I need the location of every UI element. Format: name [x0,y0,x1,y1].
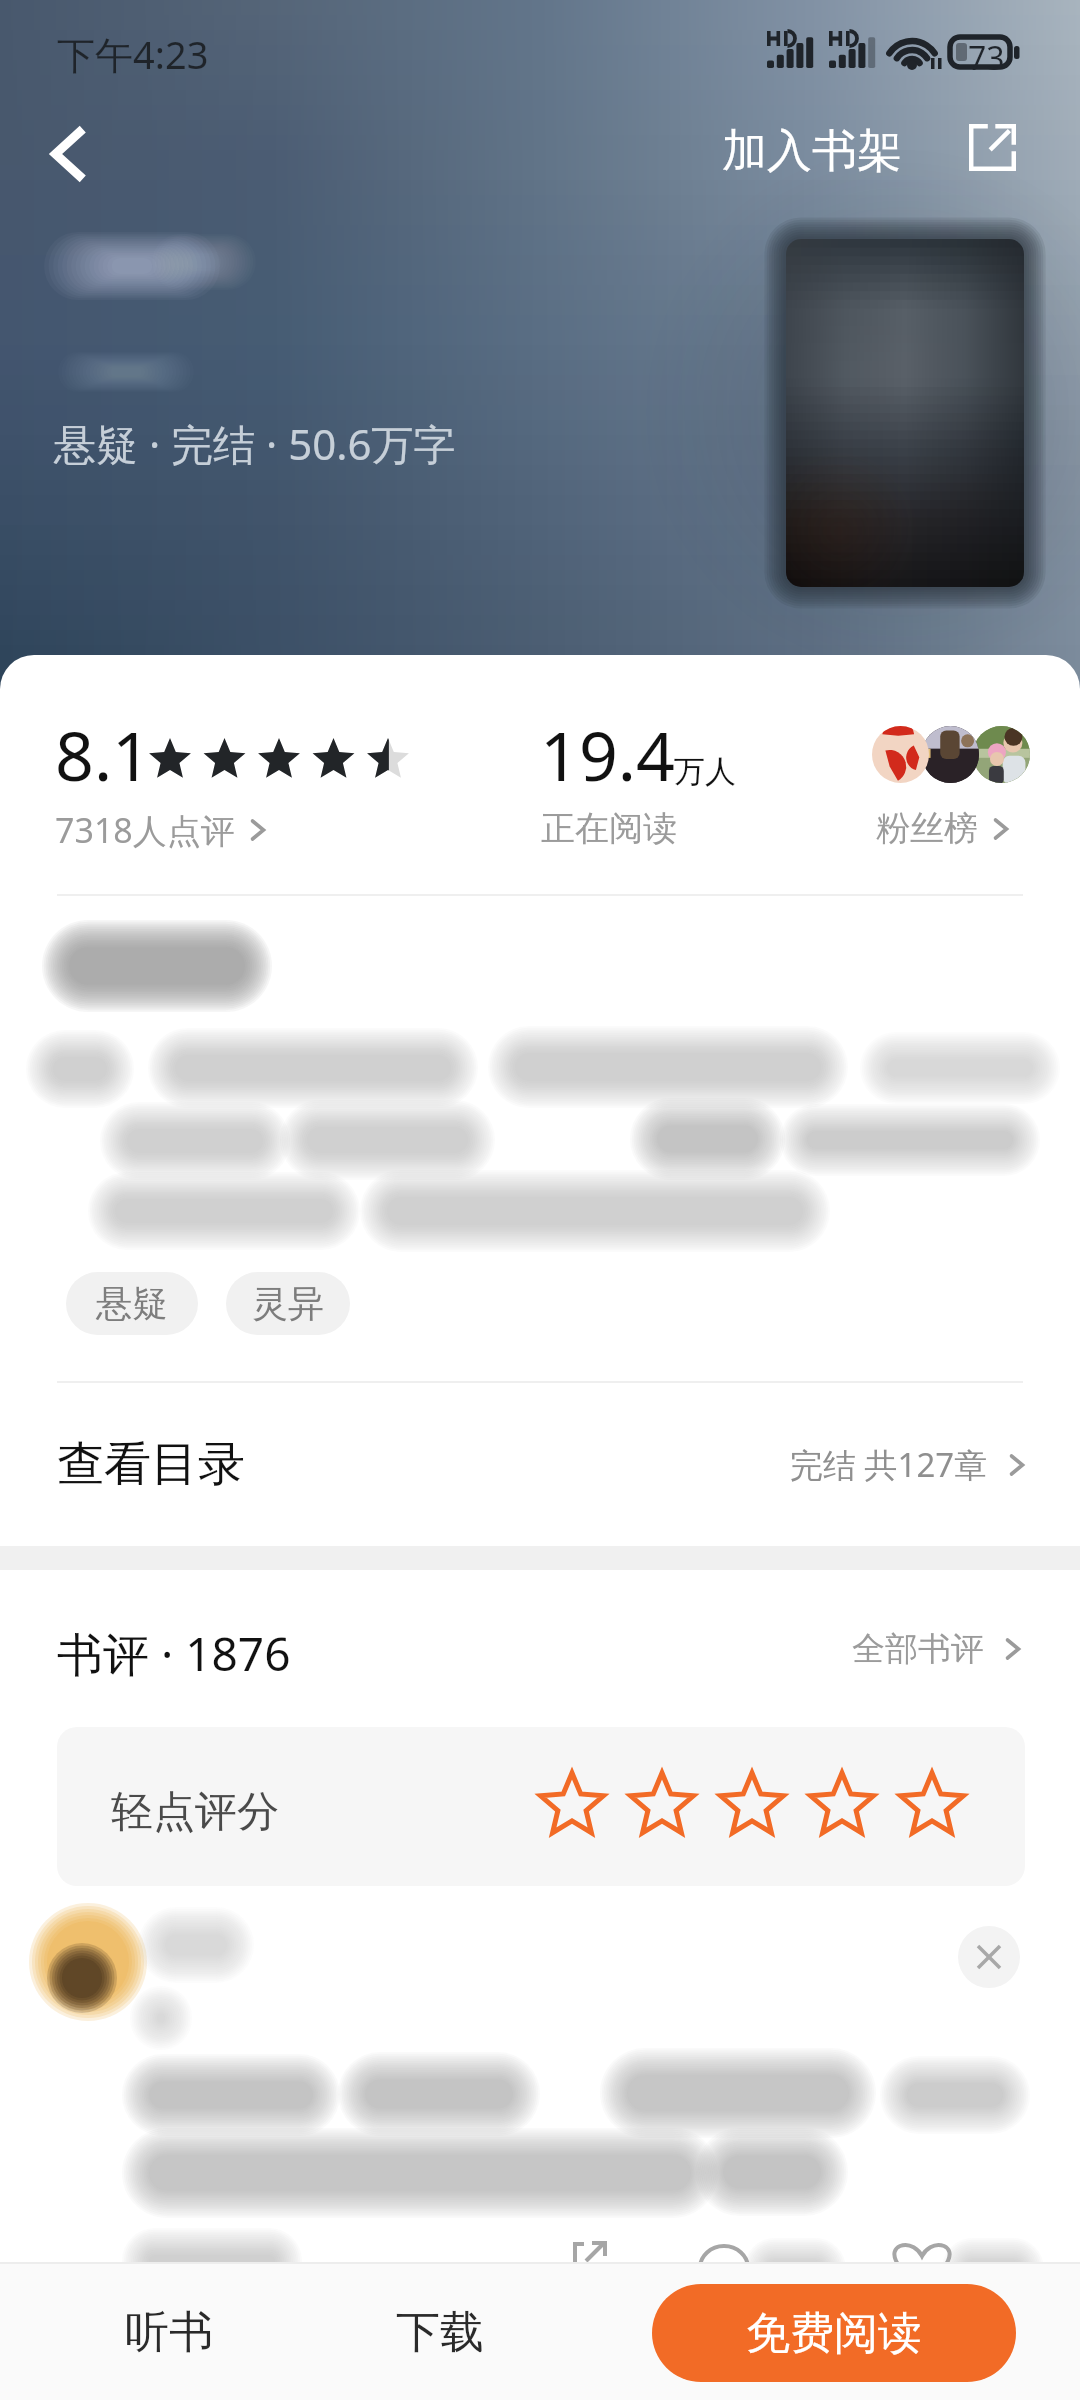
staticText: 粉丝榜 [876,807,978,850]
staticText: 悬疑 · 完结 · 50.6万字 [54,415,456,472]
button[interactable]: 全部书评 [852,1620,1028,1678]
button[interactable]: 查看目录 [0,1383,1080,1546]
button[interactable]: 轻点评分 [57,1727,1025,1886]
staticText: 轻点评分 [111,1786,279,1839]
button[interactable]: 7318人点评 [55,803,271,857]
button[interactable]: 粉丝榜 [876,803,1014,854]
button[interactable]: 下载 [310,2264,570,2400]
staticText: 正在阅读 [541,807,677,850]
staticText: 全部书评 [852,1628,984,1670]
button[interactable]: 免费阅读 [652,2284,1016,2382]
button[interactable]: Back [12,98,124,210]
staticText: 8.1 [55,708,152,801]
staticText: 免费阅读 [746,2306,922,2361]
button[interactable]: 悬疑 [66,1272,198,1335]
button[interactable]: Close [958,1926,1020,1988]
staticText: 19.4 [540,708,675,801]
staticText: 灵异 [252,1281,324,1326]
staticText: 7318人点评 [55,807,235,853]
staticText: 下午4:23 [57,28,209,80]
staticText: 下载 [396,2305,484,2360]
button[interactable]: 加入书架 [710,104,914,198]
button[interactable]: 听书 [39,2264,299,2400]
button[interactable]: 灵异 [226,1272,350,1335]
staticText: 悬疑 [96,1281,168,1326]
staticText: 听书 [125,2305,213,2360]
staticText: 73 [968,36,1005,80]
staticText: 完结 共127章 [790,1442,988,1487]
button[interactable]: Share [949,104,1035,190]
staticText: 加入书架 [722,123,902,180]
staticText: 书评 · 1876 [57,1622,291,1685]
staticText: 万人 [674,752,736,791]
staticText: 查看目录 [57,1435,245,1494]
